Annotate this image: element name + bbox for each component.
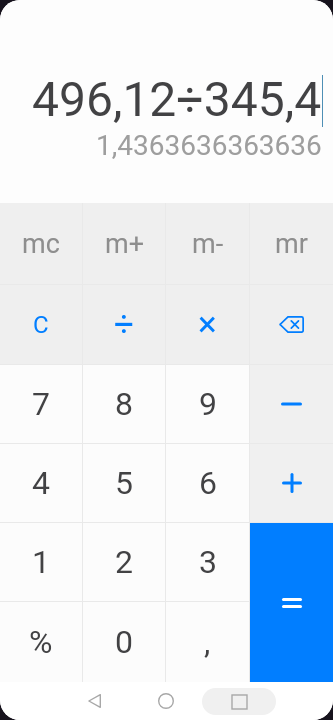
button[interactable]: 1 <box>0 523 82 601</box>
staticText: 0 <box>115 623 133 661</box>
button[interactable]: 3 <box>166 523 249 601</box>
button[interactable]: Delete <box>250 285 333 364</box>
staticText: 3 <box>199 543 217 581</box>
button[interactable]: Recent apps <box>202 688 276 715</box>
button[interactable]: mr <box>250 203 333 284</box>
staticText: , <box>204 623 211 661</box>
button[interactable]: Plus <box>250 444 333 522</box>
button[interactable]: Back <box>58 682 130 720</box>
staticText: 1,4363636363636 <box>96 129 322 162</box>
button[interactable]: × <box>166 285 249 364</box>
button[interactable]: mc <box>0 203 82 284</box>
button[interactable]: 7 <box>0 365 82 443</box>
button[interactable]: 6 <box>166 444 249 522</box>
staticText: 7 <box>32 385 50 423</box>
button[interactable]: , <box>166 602 249 682</box>
button[interactable]: 0 <box>83 602 165 682</box>
button[interactable]: m+ <box>83 203 165 284</box>
staticText: 8 <box>115 385 133 423</box>
button[interactable]: 5 <box>83 444 165 522</box>
button[interactable]: ÷ <box>83 285 165 364</box>
staticText: 496,12÷345,4 <box>32 71 322 127</box>
staticText: % <box>29 623 53 661</box>
staticText: 5 <box>115 464 133 502</box>
button[interactable]: C <box>0 285 82 364</box>
staticText: m- <box>192 228 224 260</box>
button[interactable]: Home <box>130 682 202 720</box>
staticText: 9 <box>199 385 217 423</box>
staticText: m+ <box>105 228 144 260</box>
staticText: 2 <box>115 543 133 581</box>
button[interactable]: % <box>0 602 82 682</box>
button[interactable]: m- <box>166 203 249 284</box>
button[interactable]: Equals <box>250 523 333 682</box>
staticText: C <box>33 311 49 339</box>
staticText: mr <box>275 228 308 260</box>
staticText: mc <box>22 228 60 260</box>
button[interactable]: 2 <box>83 523 165 601</box>
button[interactable]: 8 <box>83 365 165 443</box>
button[interactable]: Minus <box>250 365 333 443</box>
button[interactable]: 4 <box>0 444 82 522</box>
staticText: ÷ <box>114 304 134 345</box>
staticText: 4 <box>32 464 50 502</box>
staticText: × <box>198 304 217 345</box>
button[interactable]: 9 <box>166 365 249 443</box>
staticText: 6 <box>199 464 217 502</box>
staticText: 1 <box>32 543 50 581</box>
